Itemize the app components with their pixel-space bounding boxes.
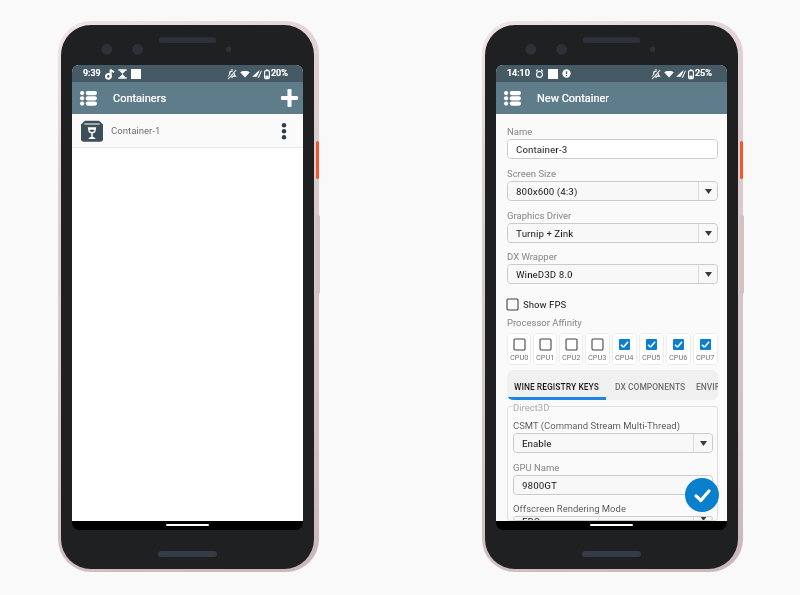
staticText: FBO (522, 516, 541, 521)
staticText: 20% (271, 68, 288, 79)
button[interactable]: Turnip + Zink (507, 223, 718, 243)
staticText: CPU1 (536, 353, 555, 362)
button[interactable]: WineD3D 8.0 (507, 264, 718, 284)
staticText: Processor Affinity (507, 317, 582, 328)
button[interactable]: ENVIRONMENT (694, 375, 718, 399)
staticText: ENVIRONMENT (696, 382, 718, 392)
button[interactable]: CPU3 (585, 333, 610, 365)
staticText: GPU Name (513, 462, 560, 473)
staticText: Screen Size (507, 168, 557, 179)
button[interactable]: Container-3 (507, 139, 718, 159)
button[interactable]: CPU7 (693, 333, 718, 365)
staticText: 25% (695, 68, 712, 79)
staticText: Container-1 (111, 125, 161, 136)
staticText: 800x600 (4:3) (516, 186, 578, 197)
staticText: CPU3 (588, 353, 607, 362)
button[interactable]: CPU5 (639, 333, 664, 365)
button[interactable]: Add container (281, 82, 298, 114)
staticText: WINE REGISTRY KEYS (514, 382, 599, 392)
staticText: Offscreen Rendering Mode (513, 503, 626, 514)
staticText: WineD3D 8.0 (516, 269, 573, 280)
button[interactable]: CPU6 (666, 333, 691, 365)
staticText: CPU4 (615, 353, 634, 362)
staticText: Turnip + Zink (516, 228, 574, 239)
button[interactable]: Show FPS (507, 299, 567, 310)
staticText: Show FPS (523, 299, 567, 310)
button[interactable]: CPU2 (559, 333, 583, 365)
staticText: Enable (522, 438, 552, 449)
button[interactable]: WINE REGISTRY KEYS (507, 375, 606, 399)
staticText: CSMT (Command Stream Multi-Thread) (513, 420, 681, 431)
button[interactable]: Open navigation menu (504, 82, 521, 114)
staticText: CPU5 (642, 353, 661, 362)
button[interactable]: DX COMPONENTS (606, 375, 694, 399)
button[interactable]: Container-1 (72, 114, 303, 147)
button[interactable]: FBO (513, 516, 713, 521)
staticText: 9800GT (522, 480, 557, 491)
staticText: Name (507, 126, 533, 137)
staticText: 14:10 (507, 68, 530, 79)
staticText: Graphics Driver (507, 210, 572, 221)
staticText: CPU6 (669, 353, 688, 362)
button[interactable]: Enable (513, 433, 713, 453)
staticText: CPU0 (510, 353, 529, 362)
button[interactable]: CPU0 (507, 333, 531, 365)
button[interactable]: 800x600 (4:3) (507, 181, 718, 201)
button[interactable]: CPU4 (612, 333, 637, 365)
staticText: New Container (537, 92, 610, 105)
button[interactable]: More options (273, 120, 295, 142)
button[interactable]: Open navigation menu (80, 82, 97, 114)
staticText: Direct3D (513, 402, 550, 413)
staticText: CPU2 (562, 353, 581, 362)
staticText: DX Wrapper (507, 251, 557, 262)
staticText: 9:39 (83, 68, 101, 79)
staticText: CPU7 (696, 353, 715, 362)
staticText: Containers (113, 92, 167, 105)
button[interactable]: CPU1 (533, 333, 557, 365)
button[interactable]: Save container (685, 478, 719, 512)
staticText: DX COMPONENTS (615, 382, 686, 392)
button[interactable]: 9800GT (513, 475, 713, 495)
staticText: Container-3 (516, 144, 568, 155)
